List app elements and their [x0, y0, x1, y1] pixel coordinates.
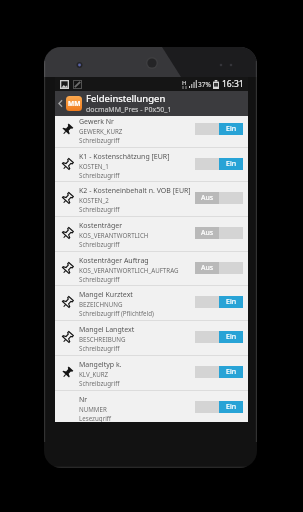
staticText: 37%: [198, 80, 211, 89]
button[interactable]: Mangel Kurztext: [55, 285, 248, 319]
staticText: KLV_KURZ: [79, 370, 109, 378]
button[interactable]: Ein: [195, 366, 243, 378]
staticText: Kostenträger: [79, 221, 123, 231]
staticText: Schreibzugriff: [79, 240, 120, 248]
staticText: Schreibzugriff: [79, 344, 120, 352]
staticText: KOSTEN_1: [79, 162, 109, 170]
button[interactable]: K1 - Kostenschätzung [EUR]: [55, 147, 248, 181]
staticText: Ein: [226, 297, 237, 307]
staticText: K2 - Kosteneinbehalt n. VOB [EUR]: [79, 186, 191, 196]
staticText: 16:31: [222, 78, 244, 90]
staticText: Ein: [226, 402, 237, 412]
button[interactable]: Ein: [195, 401, 243, 413]
staticText: Nr: [79, 395, 88, 405]
button[interactable]: Aus: [195, 262, 243, 274]
staticText: Schreibzugriff (Pflichtfeld): [79, 309, 154, 317]
staticText: MM: [68, 99, 81, 108]
staticText: Ein: [226, 367, 237, 377]
staticText: H: [182, 79, 187, 87]
staticText: Ein: [226, 332, 237, 342]
staticText: Aus: [201, 193, 214, 203]
button[interactable]: Gewerk Nr: [55, 116, 248, 146]
staticText: BEZEICHNUNG: [79, 300, 123, 308]
button[interactable]: Mangeltyp k.: [55, 355, 248, 389]
staticText: KOS_VERANTWORTLICH_AUFTRAG: [79, 266, 179, 274]
staticText: Aus: [201, 228, 214, 238]
button[interactable]: Ein: [195, 123, 243, 135]
staticText: K1 - Kostenschätzung [EUR]: [79, 152, 170, 162]
button[interactable]: Aus: [195, 227, 243, 239]
staticText: Lesezugriff: [79, 414, 112, 422]
staticText: Schreibzugriff: [79, 136, 120, 144]
button[interactable]: K2 - Kosteneinbehalt n. VOB [EUR]: [55, 181, 248, 215]
staticText: Mangel Langtext: [79, 325, 135, 335]
button[interactable]: Ein: [195, 331, 243, 343]
staticText: Mangel Kurztext: [79, 290, 133, 300]
staticText: Gewerk Nr: [79, 117, 115, 127]
staticText: KOS_VERANTWORTLICH: [79, 231, 149, 239]
button[interactable]: Ein: [195, 158, 243, 170]
button[interactable]: Ein: [195, 296, 243, 308]
staticText: Schreibzugriff: [79, 275, 120, 283]
button[interactable]: Kostenträger: [55, 216, 248, 250]
staticText: Kostenträger Auftrag: [79, 256, 149, 266]
staticText: Mangeltyp k.: [79, 360, 122, 370]
staticText: docmaMM_Pres - P0x50_1: [86, 105, 172, 115]
staticText: Aus: [201, 263, 214, 273]
button[interactable]: Aus: [195, 192, 243, 204]
staticText: NUMMER: [79, 405, 107, 413]
staticText: Ein: [226, 124, 237, 134]
staticText: BESCHREIBUNG: [79, 335, 126, 343]
staticText: GEWERK_KURZ: [79, 127, 123, 135]
button[interactable]: Nr: [55, 390, 248, 422]
button[interactable]: Kostenträger Auftrag: [55, 251, 248, 285]
staticText: Schreibzugriff: [79, 205, 120, 213]
button[interactable]: Mangel Langtext: [55, 320, 248, 354]
staticText: KOSTEN_2: [79, 196, 109, 204]
staticText: Schreibzugriff: [79, 171, 120, 179]
staticText: Ein: [226, 159, 237, 169]
staticText: Feldeinstellungen: [86, 92, 166, 105]
button[interactable]: Back: [55, 91, 66, 116]
staticText: Schreibzugriff: [79, 379, 120, 387]
